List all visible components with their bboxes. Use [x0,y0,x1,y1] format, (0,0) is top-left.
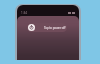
staticText: Tap to power off [44,26,66,30]
button[interactable]: Tap to power off [27,23,67,32]
staticText: 1:34 [21,11,27,15]
